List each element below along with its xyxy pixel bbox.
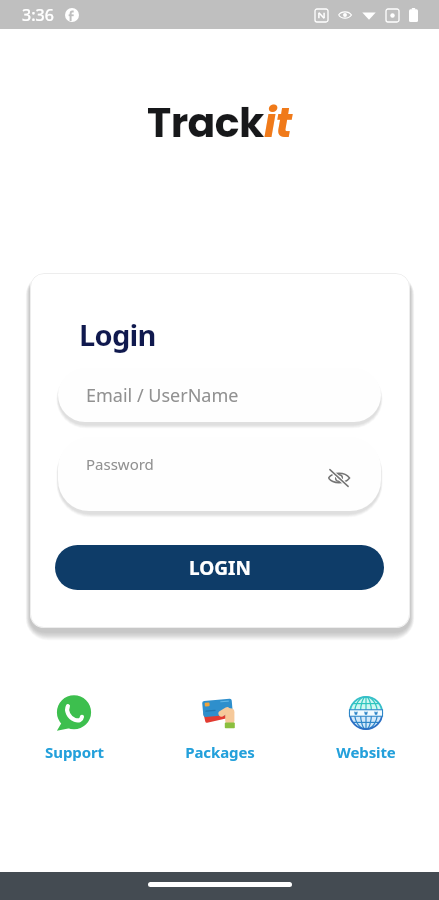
staticText: Track <box>147 94 264 151</box>
staticText: Email / UserName <box>86 383 239 408</box>
staticText: 3:36 <box>22 4 54 26</box>
button[interactable]: Password <box>58 437 381 511</box>
staticText: Password <box>86 454 154 474</box>
staticText: Support <box>45 742 104 762</box>
staticText: LOGIN <box>189 555 251 581</box>
staticText: Website <box>336 742 396 762</box>
button[interactable]: Packages <box>165 692 275 762</box>
staticText: Login <box>79 315 156 354</box>
button[interactable]: LOGIN <box>55 545 384 590</box>
button[interactable]: Website <box>311 692 421 762</box>
staticText: Packages <box>185 742 255 762</box>
button[interactable]: Show password <box>321 460 357 496</box>
button[interactable]: Support <box>19 692 129 762</box>
button[interactable]: Email / UserName <box>58 368 381 422</box>
staticText: it <box>264 94 292 151</box>
